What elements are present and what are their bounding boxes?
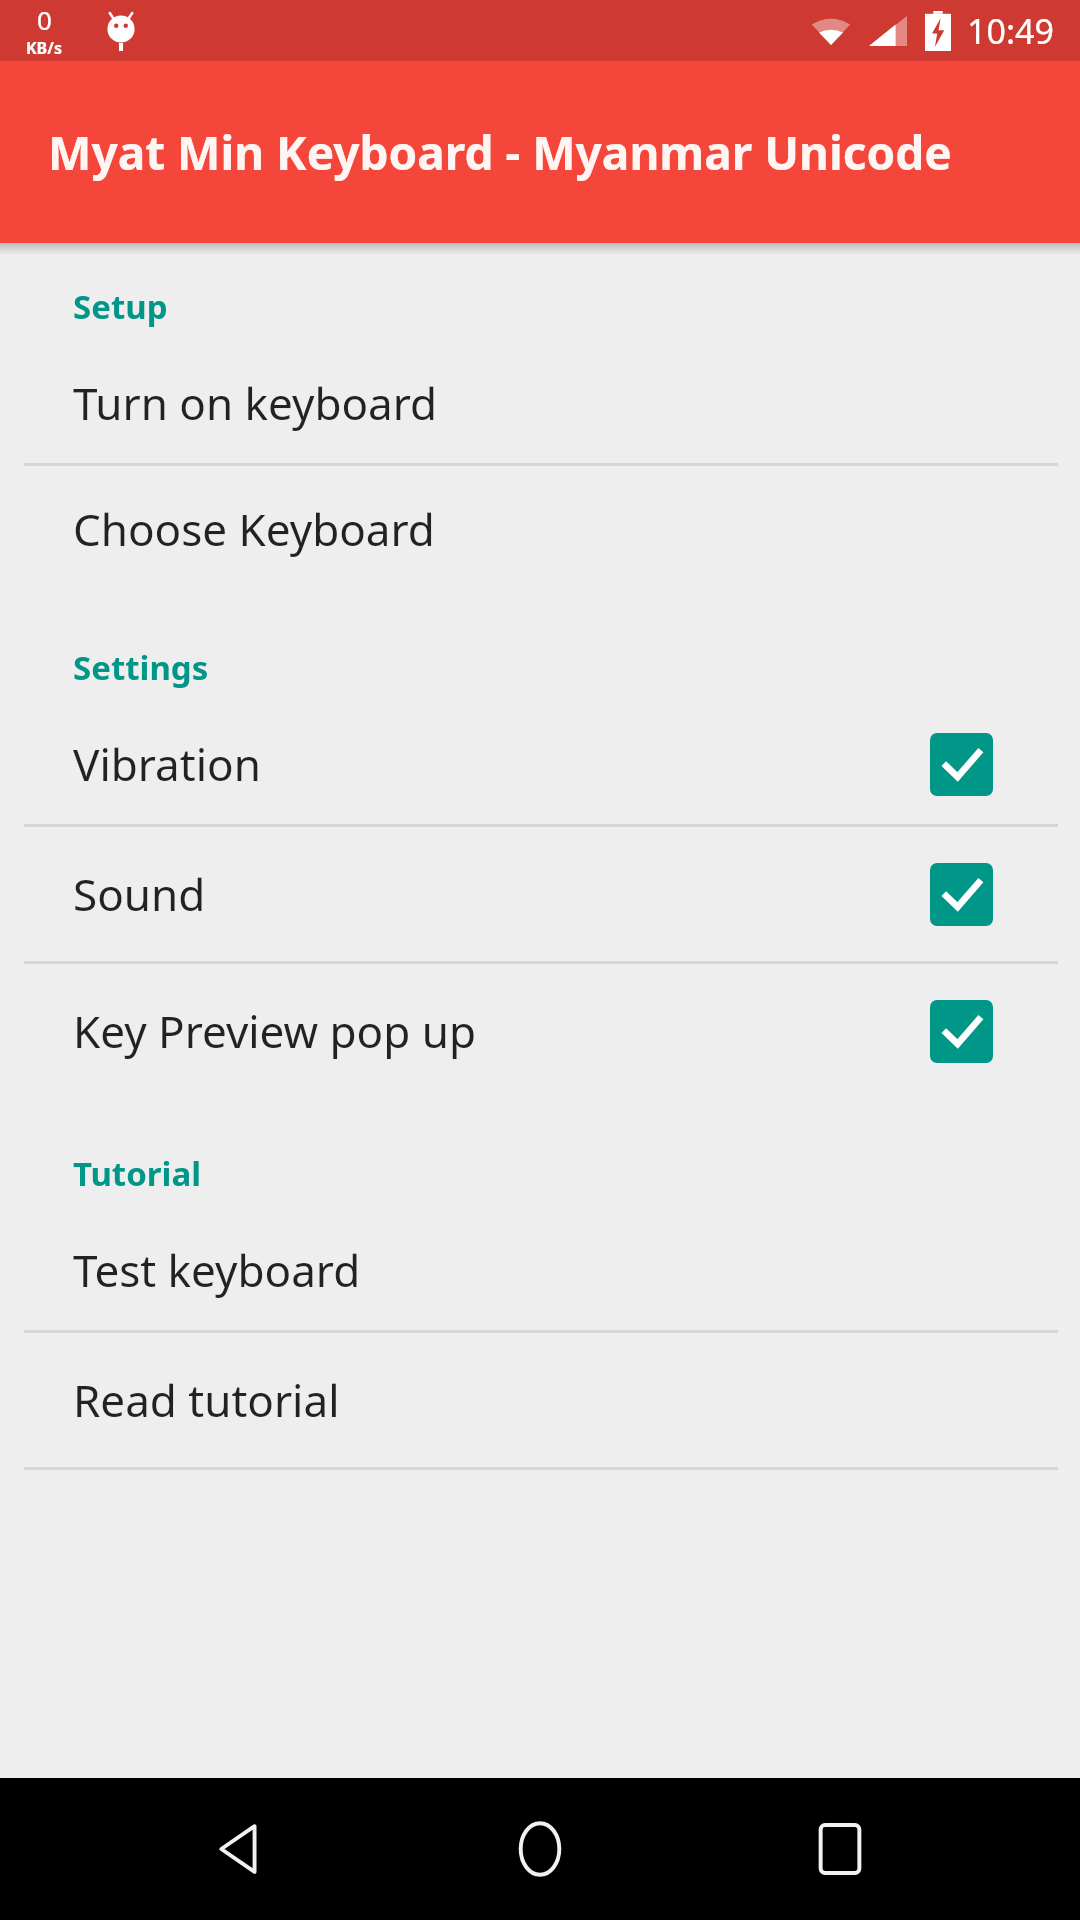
button[interactable]: Toggle setting bbox=[930, 1000, 993, 1063]
staticText: Settings bbox=[73, 645, 209, 690]
staticText: Tutorial bbox=[73, 1151, 202, 1196]
staticText: Sound bbox=[73, 864, 206, 924]
button[interactable]: Test keyboard bbox=[0, 1210, 1080, 1330]
button[interactable]: Recent apps bbox=[780, 1789, 900, 1909]
button[interactable]: Back bbox=[180, 1789, 300, 1909]
staticText: Setup bbox=[73, 284, 168, 329]
button[interactable]: Toggle setting bbox=[930, 863, 993, 926]
button[interactable]: Sound bbox=[0, 827, 1080, 961]
staticText: KB/s bbox=[26, 37, 62, 59]
staticText: Turn on keyboard bbox=[73, 373, 438, 433]
button[interactable]: Choose Keyboard bbox=[0, 466, 1080, 592]
button[interactable]: Key Preview pop up bbox=[0, 964, 1080, 1098]
staticText: Key Preview pop up bbox=[73, 1001, 476, 1061]
button[interactable]: Toggle setting bbox=[930, 733, 993, 796]
staticText: Vibration bbox=[73, 734, 261, 794]
staticText: Myat Min Keyboard - Myanmar Unicode bbox=[48, 121, 952, 184]
button[interactable]: Home bbox=[480, 1789, 600, 1909]
staticText: Read tutorial bbox=[73, 1370, 340, 1430]
staticText: Choose Keyboard bbox=[73, 499, 435, 559]
staticText: 0 bbox=[37, 2, 52, 37]
staticText: Test keyboard bbox=[73, 1240, 361, 1300]
staticText: 10:49 bbox=[967, 8, 1054, 54]
button[interactable]: Turn on keyboard bbox=[0, 343, 1080, 463]
button[interactable]: Read tutorial bbox=[0, 1333, 1080, 1467]
button[interactable]: Vibration bbox=[0, 704, 1080, 824]
